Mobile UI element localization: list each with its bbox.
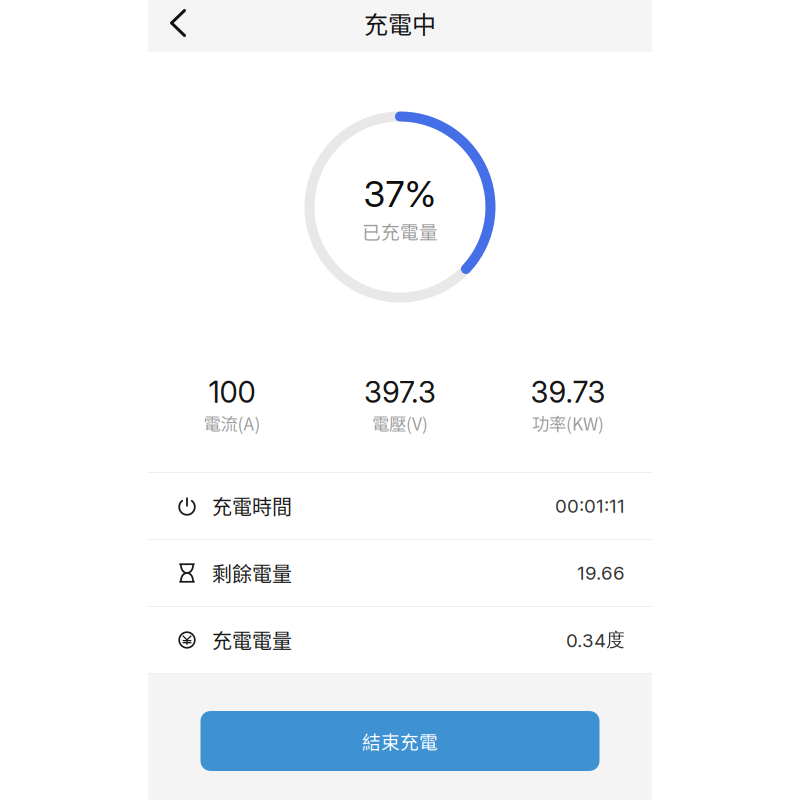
staticText: 已充電量 [362, 217, 438, 244]
staticText: 剩餘電量 [212, 558, 292, 587]
button[interactable]: 結束充電 [200, 711, 599, 771]
button[interactable]: 充電時間 [148, 473, 652, 540]
staticText: 397.3 [364, 374, 436, 410]
staticText: 充電中 [364, 6, 436, 40]
staticText: 00:01:11 [555, 495, 625, 517]
staticText: 0.34度 [566, 628, 625, 652]
button[interactable]: 充電電量 [148, 607, 652, 674]
staticText: 電流(A) [203, 410, 260, 436]
staticText: 39.73 [530, 374, 605, 410]
staticText: 功率(KW) [532, 410, 604, 436]
button[interactable]: 剩餘電量 [148, 540, 652, 607]
staticText: 37% [363, 172, 436, 216]
staticText: 充電電量 [212, 625, 292, 654]
staticText: 結束充電 [362, 727, 438, 754]
button[interactable]: Back [148, 0, 208, 46]
staticText: 電壓(V) [372, 410, 428, 436]
staticText: 充電時間 [212, 491, 292, 520]
staticText: 19.66 [577, 562, 625, 584]
staticText: 100 [208, 374, 255, 410]
